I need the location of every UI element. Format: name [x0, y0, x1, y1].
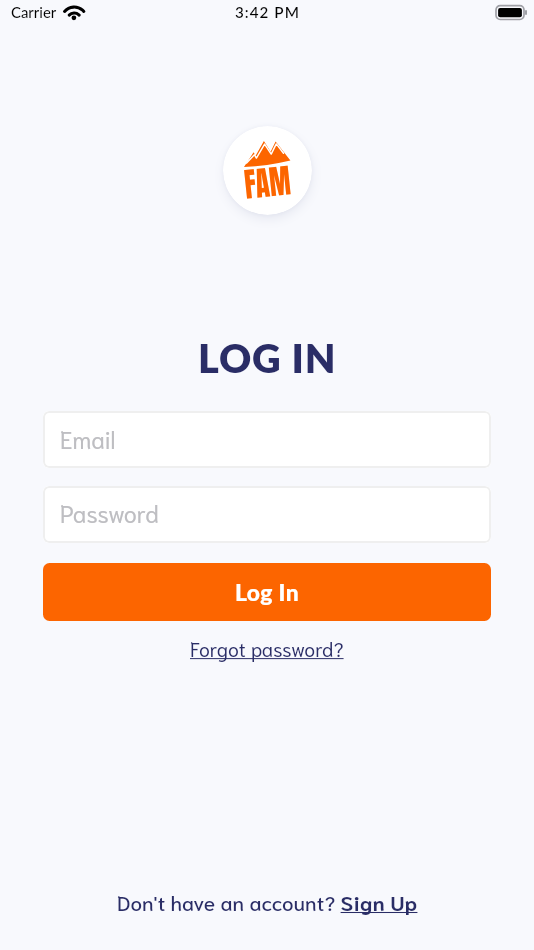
- staticText: Password: [60, 497, 159, 528]
- other: Battery full: [492, 2, 530, 24]
- staticText: LOG IN: [198, 334, 337, 382]
- button[interactable]: Password: [43, 486, 491, 543]
- other: Wi-Fi signal: [62, 2, 88, 24]
- staticText: 3:42 PM: [235, 3, 300, 21]
- other: FAM logo: [223, 126, 312, 215]
- staticText: Forgot password?: [190, 635, 344, 661]
- staticText: Don't have an account? Sign Up: [117, 888, 418, 915]
- button[interactable]: Don't have an account? Sign Up: [111, 885, 424, 918]
- staticText: Email: [60, 423, 116, 454]
- staticText: Log In: [235, 578, 300, 605]
- staticText: Carrier: [11, 3, 57, 21]
- button[interactable]: Forgot password?: [184, 632, 350, 664]
- staticText: FAM: [242, 155, 293, 210]
- button[interactable]: Email: [43, 411, 491, 468]
- button[interactable]: Log In: [43, 563, 491, 621]
